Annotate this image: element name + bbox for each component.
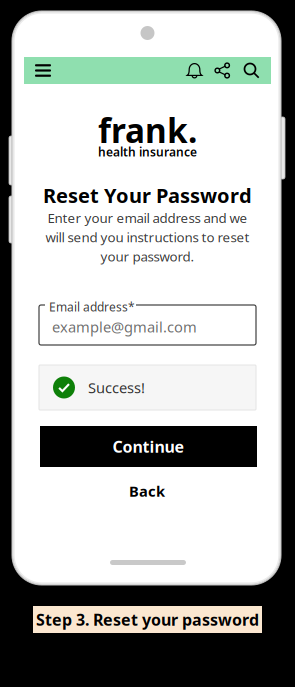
staticText: Step 3. Reset your password: [36, 609, 259, 630]
button[interactable]: Share: [208, 57, 237, 84]
button[interactable]: Menu: [28, 57, 58, 84]
staticText: Success!: [88, 378, 145, 397]
button[interactable]: Back: [97, 481, 197, 501]
staticText: Continue: [112, 436, 184, 457]
button[interactable]: Notifications: [181, 57, 208, 84]
button[interactable]: Continue: [40, 426, 257, 467]
staticText: Enter your email address and we: [47, 209, 247, 227]
staticText: your password.: [100, 247, 194, 265]
staticText: Email address*: [49, 299, 135, 315]
staticText: Reset Your Password: [43, 182, 252, 209]
staticText: health insurance: [98, 144, 197, 160]
staticText: Back: [129, 481, 165, 501]
button[interactable]: Search: [237, 57, 266, 84]
staticText: example@gmail.com: [52, 317, 197, 336]
staticText: frank.: [98, 108, 197, 152]
staticText: will send you instructions to reset: [45, 228, 249, 246]
